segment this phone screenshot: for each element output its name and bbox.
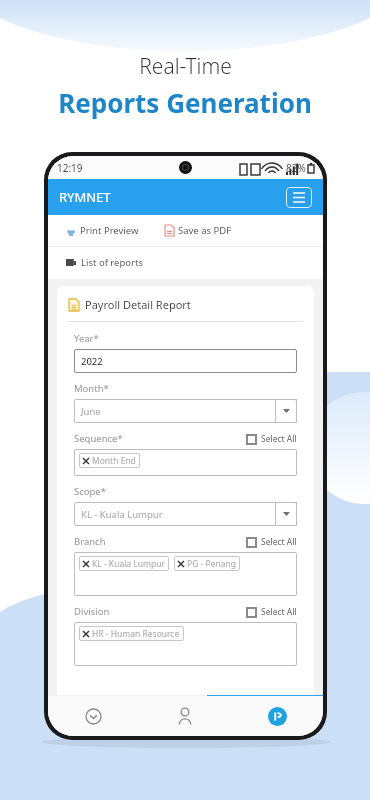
button[interactable]: Time	[48, 696, 139, 736]
staticText: List of reports	[81, 256, 143, 269]
button[interactable]: Select All	[246, 433, 297, 445]
staticText: Scope*	[74, 485, 106, 498]
staticText: HR - Human Resource	[92, 628, 180, 640]
button[interactable]: June	[74, 399, 297, 423]
button[interactable]: 2022	[74, 349, 297, 373]
staticText: Real-Time	[139, 52, 232, 81]
staticText: Select All	[261, 536, 297, 548]
staticText: Month End	[92, 455, 136, 467]
staticText: 82%	[286, 161, 306, 175]
staticText: KL - Kuala Lumpur	[92, 558, 165, 570]
staticText: PG - Penang	[187, 558, 236, 570]
staticText: Print Preview	[80, 224, 139, 237]
staticText: RYMNET	[59, 188, 111, 206]
button[interactable]: Menu	[286, 187, 312, 208]
staticText: 2022	[81, 355, 103, 368]
staticText: Select All	[261, 433, 297, 445]
button[interactable]: Print Preview	[66, 224, 139, 237]
staticText: June	[81, 405, 101, 418]
button[interactable]: KL - Kuala Lumpur	[74, 552, 297, 596]
button[interactable]: KL - Kuala Lumpur	[74, 502, 297, 526]
button[interactable]: Select All	[246, 606, 297, 618]
staticText: Reports Generation	[58, 85, 312, 120]
button[interactable]: HR - Human Resource	[74, 622, 297, 666]
staticText: Select All	[261, 606, 297, 618]
staticText: Division	[74, 605, 110, 618]
button[interactable]: RYMNET home	[231, 696, 323, 736]
staticText: Month*	[74, 382, 109, 395]
staticText: Year*	[74, 332, 99, 345]
staticText: Branch	[74, 535, 106, 548]
staticText: 12:19	[57, 161, 83, 175]
staticText: KL - Kuala Lumpur	[81, 508, 163, 521]
staticText: Save as PDF	[178, 224, 232, 237]
button[interactable]: Month End	[74, 449, 297, 476]
staticText: Payroll Detail Report	[85, 297, 191, 312]
staticText: Sequence*	[74, 432, 123, 445]
button[interactable]: Select All	[246, 536, 297, 548]
button[interactable]: List of reports	[48, 247, 323, 279]
button[interactable]: Save as PDF	[165, 224, 232, 237]
button[interactable]: Profile	[139, 696, 231, 736]
